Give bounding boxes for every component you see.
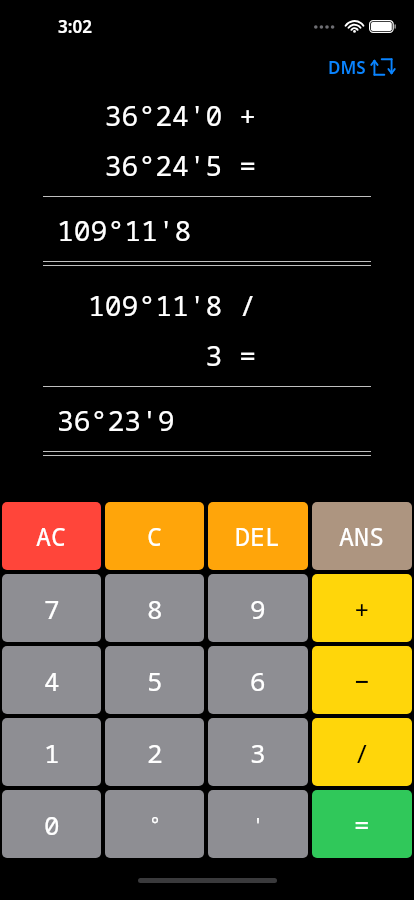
staticText: C <box>147 519 163 553</box>
other: Swap units <box>370 54 396 80</box>
button[interactable]: C <box>105 502 204 570</box>
staticText: ANS <box>339 519 385 553</box>
staticText: 109°11'8 <box>57 211 414 249</box>
button[interactable]: − <box>312 646 412 714</box>
button[interactable]: 3 <box>208 718 308 786</box>
staticText: 7 <box>44 591 60 626</box>
button[interactable]: 2 <box>105 718 204 786</box>
staticText: 36°23'9 <box>57 401 414 439</box>
staticText: 9 <box>250 591 266 626</box>
button[interactable]: ' <box>208 790 308 858</box>
button[interactable]: 0 <box>2 790 101 858</box>
staticText: 36°24'0 + <box>0 96 256 134</box>
button[interactable]: DEL <box>208 502 308 570</box>
button[interactable]: DMS <box>324 52 400 82</box>
staticText: AC <box>36 519 67 553</box>
button[interactable]: 9 <box>208 574 308 642</box>
button[interactable]: 6 <box>208 646 308 714</box>
button[interactable]: = <box>312 790 412 858</box>
staticText: 0 <box>44 807 60 842</box>
button[interactable]: 7 <box>2 574 101 642</box>
button[interactable]: ANS <box>312 502 412 570</box>
staticText: 36°24'5 = <box>0 146 256 184</box>
button[interactable]: ° <box>105 790 204 858</box>
button[interactable]: 8 <box>105 574 204 642</box>
staticText: 5 <box>147 663 163 698</box>
staticText: − <box>354 663 370 698</box>
staticText: 109°11'8 / <box>0 286 256 324</box>
staticText: 4 <box>44 663 60 698</box>
button[interactable]: 4 <box>2 646 101 714</box>
staticText: 6 <box>250 663 266 698</box>
staticText: 8 <box>147 591 163 626</box>
staticText: ° <box>149 811 161 838</box>
staticText: 1 <box>44 735 60 770</box>
button[interactable]: 5 <box>105 646 204 714</box>
button[interactable]: AC <box>2 502 101 570</box>
button[interactable]: / <box>312 718 412 786</box>
staticText: 3:02 <box>58 15 92 38</box>
staticText: = <box>354 807 370 842</box>
staticText: ' <box>252 811 264 838</box>
staticText: DEL <box>235 519 281 553</box>
staticText: DMS <box>328 56 366 79</box>
button[interactable]: 1 <box>2 718 101 786</box>
staticText: / <box>354 735 370 770</box>
staticText: 2 <box>147 735 163 770</box>
staticText: + <box>354 591 370 626</box>
button[interactable]: + <box>312 574 412 642</box>
staticText: 3 <box>250 735 266 770</box>
staticText: 3 = <box>0 336 256 374</box>
